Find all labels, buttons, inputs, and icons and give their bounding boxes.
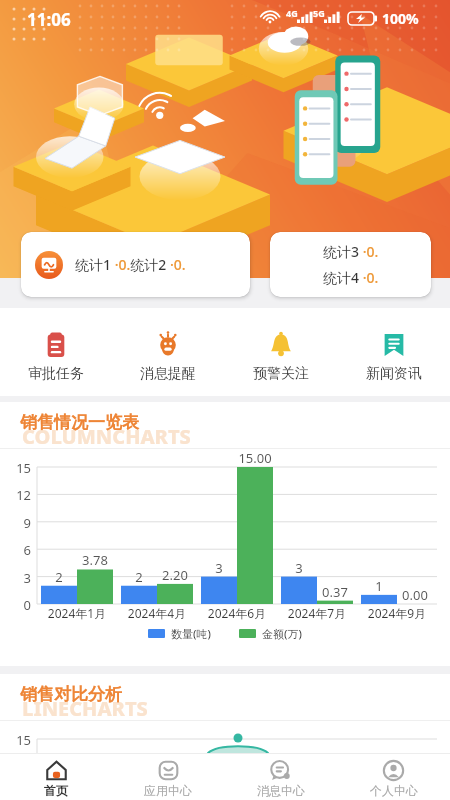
staticText: COLUMNCHARTS — [22, 423, 191, 450]
staticText: 0 — [6, 596, 31, 614]
staticText: 15 — [6, 459, 31, 477]
staticText: 12 — [6, 486, 31, 504]
staticText: 统计1 ·0.统计2 ·0. — [75, 255, 186, 274]
staticText: 数量(吨) — [171, 626, 211, 641]
staticText: 2.20 — [143, 566, 207, 584]
staticText: 统计3 ·0. — [323, 242, 379, 261]
staticText: 3 — [6, 569, 31, 587]
staticText: 消息中心 — [257, 783, 305, 798]
staticText: 首页 — [44, 783, 68, 798]
button[interactable]: 个人中心 — [337, 753, 450, 798]
staticText: LINECHARTS — [22, 695, 148, 722]
staticText: 5G — [313, 7, 325, 19]
staticText: 消息提醒 — [140, 365, 196, 383]
staticText: 2024年7月 — [277, 605, 357, 621]
staticText: 统计4 ·0. — [323, 268, 379, 287]
staticText: 0.00 — [383, 586, 447, 604]
button[interactable]: 金额(万) — [239, 626, 302, 641]
staticText: 2 — [107, 568, 171, 586]
button[interactable]: 消息中心 — [224, 753, 337, 798]
button[interactable]: 首页 — [0, 753, 112, 798]
staticText: 审批任务 — [28, 365, 84, 383]
staticText: 预警关注 — [253, 365, 309, 383]
staticText: 11:06 — [27, 8, 71, 31]
staticText: 应用中心 — [144, 783, 192, 798]
staticText: 销售情况一览表 — [20, 412, 139, 433]
staticText: 金额(万) — [262, 626, 302, 641]
button[interactable]: 数量(吨) — [148, 626, 211, 641]
button[interactable]: 新闻资讯 — [337, 308, 450, 383]
button[interactable]: 审批任务 — [0, 308, 112, 383]
staticText: 4G — [286, 7, 298, 19]
staticText: 15 — [6, 731, 31, 749]
staticText: 2024年1月 — [37, 605, 117, 621]
button[interactable]: 统计1 ·0.统计2 ·0. — [21, 232, 250, 297]
button[interactable]: 应用中心 — [112, 753, 224, 798]
staticText: 3.78 — [63, 551, 127, 569]
staticText: 9 — [6, 514, 31, 532]
button[interactable]: 统计3 ·0. — [270, 232, 431, 297]
staticText: 0.37 — [303, 583, 367, 601]
staticText: 15.00 — [223, 449, 287, 467]
staticText: 新闻资讯 — [366, 365, 422, 383]
staticText: 个人中心 — [370, 783, 418, 798]
staticText: 3 — [187, 559, 251, 577]
staticText: 3 — [267, 559, 331, 577]
staticText: 销售对比分析 — [20, 684, 122, 705]
staticText: 1 — [347, 577, 411, 595]
staticText: 100% — [382, 9, 419, 28]
button[interactable]: 预警关注 — [224, 308, 337, 383]
staticText: 2 — [27, 568, 91, 586]
staticText: 2024年9月 — [357, 605, 437, 621]
staticText: 2024年4月 — [117, 605, 197, 621]
staticText: 2024年6月 — [197, 605, 277, 621]
staticText: 6 — [6, 541, 31, 559]
button[interactable]: 消息提醒 — [112, 308, 224, 383]
